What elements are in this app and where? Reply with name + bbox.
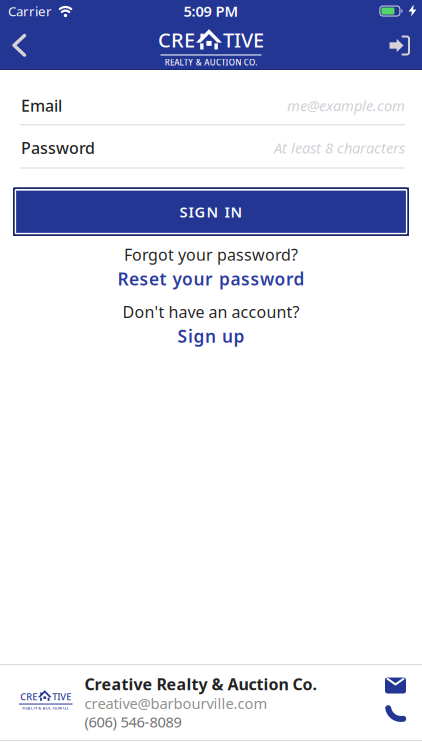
staticText: Reset your password [117, 267, 304, 290]
button[interactable]: Back [0, 22, 43, 69]
staticText: Don't have an account? [122, 301, 299, 322]
staticText: me@example.com [287, 96, 405, 115]
staticText: REALTY & AUCTION CO. [165, 57, 257, 68]
staticText: (606) 546-8089 [84, 712, 181, 732]
staticText: CRE [20, 690, 37, 703]
button[interactable]: Sign In [375, 22, 422, 69]
staticText: Carrier [8, 2, 52, 20]
staticText: Sign up [177, 324, 244, 347]
staticText: TIVE [223, 26, 264, 53]
staticText: SIGN IN [179, 202, 242, 221]
button[interactable]: Email [0, 70, 422, 124]
staticText: Forgot your password? [124, 244, 298, 265]
button[interactable]: Sign up [177, 324, 244, 347]
staticText: CRE [158, 26, 195, 53]
button[interactable]: Call [385, 702, 405, 722]
staticText: At least 8 characters [274, 138, 405, 158]
button[interactable]: SIGN IN [13, 187, 409, 236]
staticText: creative@barbourville.com [84, 694, 267, 713]
staticText: Creative Realty & Auction Co. [84, 673, 316, 695]
button[interactable]: Reset your password [117, 267, 304, 290]
staticText: Password [21, 137, 95, 158]
button[interactable]: Email [385, 677, 406, 693]
button[interactable]: Password [0, 125, 422, 167]
staticText: REALTY & AUCTION CO. [22, 705, 69, 711]
staticText: TIVE [52, 690, 71, 703]
staticText: Email [21, 95, 62, 116]
staticText: 5:09 PM [183, 1, 238, 21]
